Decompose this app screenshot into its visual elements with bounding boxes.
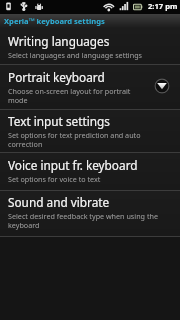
button[interactable]: Sound and vibrate bbox=[0, 191, 180, 236]
staticText: Choose on-screen layout for portrait mod… bbox=[8, 86, 131, 105]
staticText: Portrait keyboard bbox=[8, 69, 105, 85]
staticText: Set options for text prediction and auto… bbox=[8, 130, 141, 149]
staticText: Sound and vibrate bbox=[8, 194, 110, 210]
staticText: Select desired feedback type when using … bbox=[8, 211, 158, 230]
staticText: 2:17 pm bbox=[148, 1, 178, 11]
button[interactable]: Text input settings bbox=[0, 110, 180, 152]
staticText: Xperia™ keyboard settings bbox=[4, 16, 105, 26]
button[interactable]: Open keyboard layout chooser bbox=[154, 78, 170, 94]
staticText: Text input settings bbox=[8, 113, 110, 129]
button[interactable]: Voice input fr. keyboard bbox=[0, 153, 180, 190]
staticText: Voice input fr. keyboard bbox=[8, 157, 138, 173]
button[interactable]: Writing languages bbox=[0, 28, 180, 64]
staticText: Writing languages bbox=[8, 33, 110, 49]
staticText: Set options for voice to text bbox=[8, 174, 101, 184]
button[interactable]: Portrait keyboard bbox=[0, 65, 180, 109]
staticText: Select languages and language settings bbox=[8, 50, 143, 60]
